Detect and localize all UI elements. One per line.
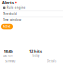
staticText: Today [32, 54, 39, 57]
staticText: Active [3, 25, 11, 28]
staticText: 12 hits [29, 49, 42, 54]
staticText: 18:45 [3, 49, 12, 54]
staticText: Time window [3, 18, 21, 22]
staticText: Details [47, 59, 56, 63]
staticText: Alerts [2, 0, 14, 5]
staticText: Summary [5, 59, 15, 63]
button[interactable]: Details [47, 59, 56, 63]
button[interactable]: Active [1, 24, 13, 29]
staticText: Rule engine [7, 6, 26, 9]
staticText: Last run [3, 54, 13, 57]
staticText: Threshold [3, 12, 17, 16]
button[interactable]: Summary [5, 59, 15, 63]
